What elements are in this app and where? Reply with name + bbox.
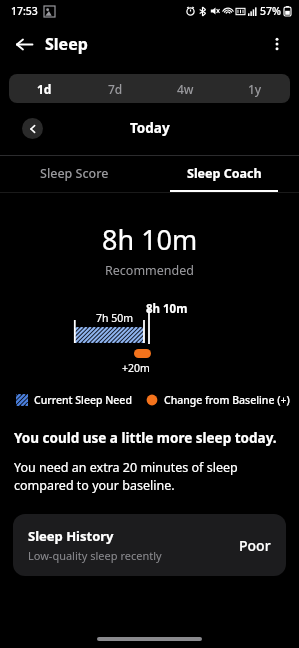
staticText: Current Sleep Need (34, 393, 132, 407)
staticText: 57% (260, 4, 281, 18)
staticText: +20m (122, 361, 150, 375)
button[interactable]: Sleep History (13, 514, 286, 576)
staticText: Sleep (45, 33, 88, 55)
staticText: Low-quality sleep recently (28, 548, 162, 563)
staticText: Recommended (105, 262, 194, 279)
staticText: Today (130, 119, 170, 137)
staticText: Sleep History (28, 527, 114, 545)
button[interactable]: Sleep Coach (149, 156, 299, 190)
staticText: You could use a little more sleep today. (14, 429, 277, 447)
button[interactable]: 7d (80, 74, 150, 103)
button[interactable]: More options (259, 26, 295, 62)
button[interactable]: Previous day (22, 118, 43, 139)
staticText: 7h 50m (96, 311, 134, 325)
staticText: Sleep Coach (187, 165, 262, 182)
button[interactable]: 4w (150, 74, 220, 103)
staticText: 17:53 (11, 4, 38, 18)
button[interactable]: 1y (220, 74, 290, 103)
staticText: 8h 10m (102, 221, 198, 258)
staticText: 8h 10m (146, 301, 188, 317)
staticText: 7d (108, 81, 123, 97)
staticText: Change from Baseline (+) (164, 393, 290, 407)
staticText: Sleep Score (40, 165, 109, 182)
button[interactable]: 1d (9, 74, 80, 103)
staticText: 4w (177, 81, 194, 97)
staticText: You need an extra 20 minutes of sleep co… (14, 459, 285, 494)
staticText: 1y (248, 81, 262, 97)
button[interactable]: Sleep Score (0, 156, 149, 190)
staticText: Poor (239, 536, 271, 555)
staticText: 1d (37, 81, 52, 97)
button[interactable]: Back (6, 26, 42, 62)
